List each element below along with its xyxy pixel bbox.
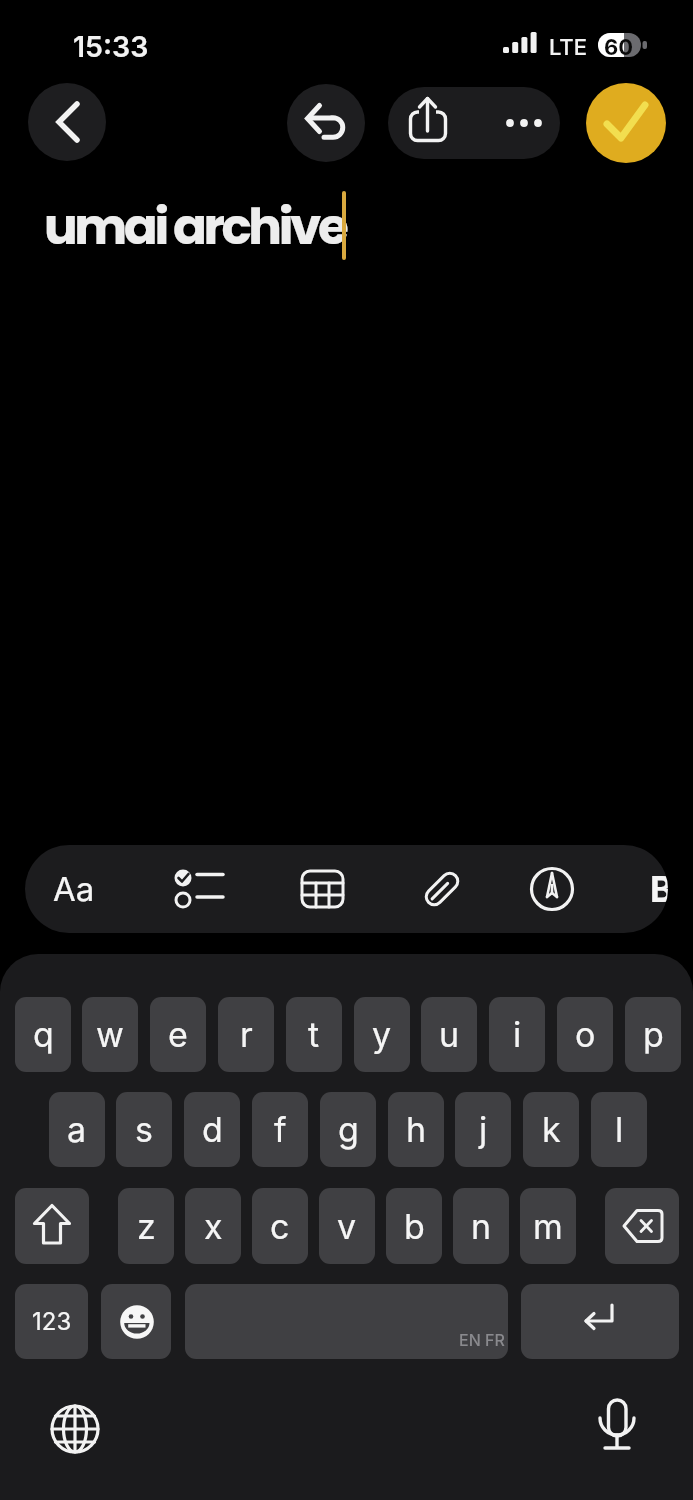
button[interactable]: g [320,1092,376,1167]
button[interactable] [474,87,560,159]
button[interactable]: Aa [42,857,106,921]
staticText: m [533,1206,563,1247]
button[interactable]: e [150,997,206,1072]
button[interactable]: h [388,1092,444,1167]
button[interactable]: s [116,1092,172,1167]
staticText: g [338,1109,359,1150]
button[interactable]: t [286,997,342,1072]
button[interactable]: p [625,997,681,1072]
button[interactable]: m [520,1188,576,1264]
button[interactable] [101,1284,171,1359]
button[interactable] [164,857,228,921]
staticText: umai archive [44,192,346,262]
button[interactable]: c [252,1188,308,1264]
staticText: l [615,1109,624,1150]
button[interactable]: v [319,1188,375,1264]
button[interactable]: B [637,857,668,921]
button[interactable] [605,1188,679,1264]
staticText: k [542,1109,561,1150]
button[interactable]: b [386,1188,442,1264]
button[interactable] [28,83,106,161]
button[interactable]: f [252,1092,308,1167]
staticText: d [202,1109,223,1150]
button[interactable]: 123 [15,1284,88,1359]
button[interactable]: x [185,1188,241,1264]
staticText: EN FR [459,1330,505,1349]
staticText: a [67,1109,87,1150]
staticText: x [204,1206,223,1247]
staticText: 60 [604,34,634,61]
button[interactable]: j [455,1092,511,1167]
staticText: j [479,1109,488,1150]
button[interactable]: u [421,997,477,1072]
staticText: c [270,1206,290,1247]
button[interactable] [520,857,584,921]
button[interactable]: r [218,997,274,1072]
button[interactable] [15,1188,89,1264]
staticText: p [643,1014,664,1055]
button[interactable] [410,857,474,921]
button[interactable]: l [591,1092,647,1167]
staticText: e [168,1014,188,1055]
staticText: 15:33 [73,29,149,63]
button[interactable] [290,857,354,921]
staticText: b [404,1206,425,1247]
button[interactable] [586,83,666,163]
button[interactable]: o [557,997,613,1072]
staticText: u [439,1014,460,1055]
staticText: s [135,1109,153,1150]
staticText: w [96,1014,124,1055]
staticText: LTE [549,34,587,61]
button[interactable] [388,87,474,159]
staticText: o [575,1014,596,1055]
staticText: y [372,1014,392,1055]
button[interactable]: i [489,997,545,1072]
button[interactable]: y [354,997,410,1072]
button[interactable] [521,1284,679,1359]
button[interactable]: n [453,1188,509,1264]
staticText: t [308,1014,320,1055]
button[interactable] [287,84,365,162]
staticText: q [33,1014,54,1055]
button[interactable] [185,1284,508,1359]
staticText: B [650,868,668,910]
staticText: Aa [53,869,95,909]
staticText: f [274,1109,287,1150]
button[interactable]: d [184,1092,240,1167]
staticText: n [471,1206,492,1247]
button[interactable]: k [523,1092,579,1167]
button[interactable]: q [15,997,71,1072]
staticText: i [513,1014,522,1055]
staticText: z [137,1206,156,1247]
staticText: r [240,1014,253,1055]
staticText: 123 [32,1307,72,1336]
staticText: h [406,1109,427,1150]
staticText: v [337,1206,357,1247]
button[interactable]: w [82,997,138,1072]
button[interactable]: a [49,1092,105,1167]
button[interactable]: z [118,1188,174,1264]
